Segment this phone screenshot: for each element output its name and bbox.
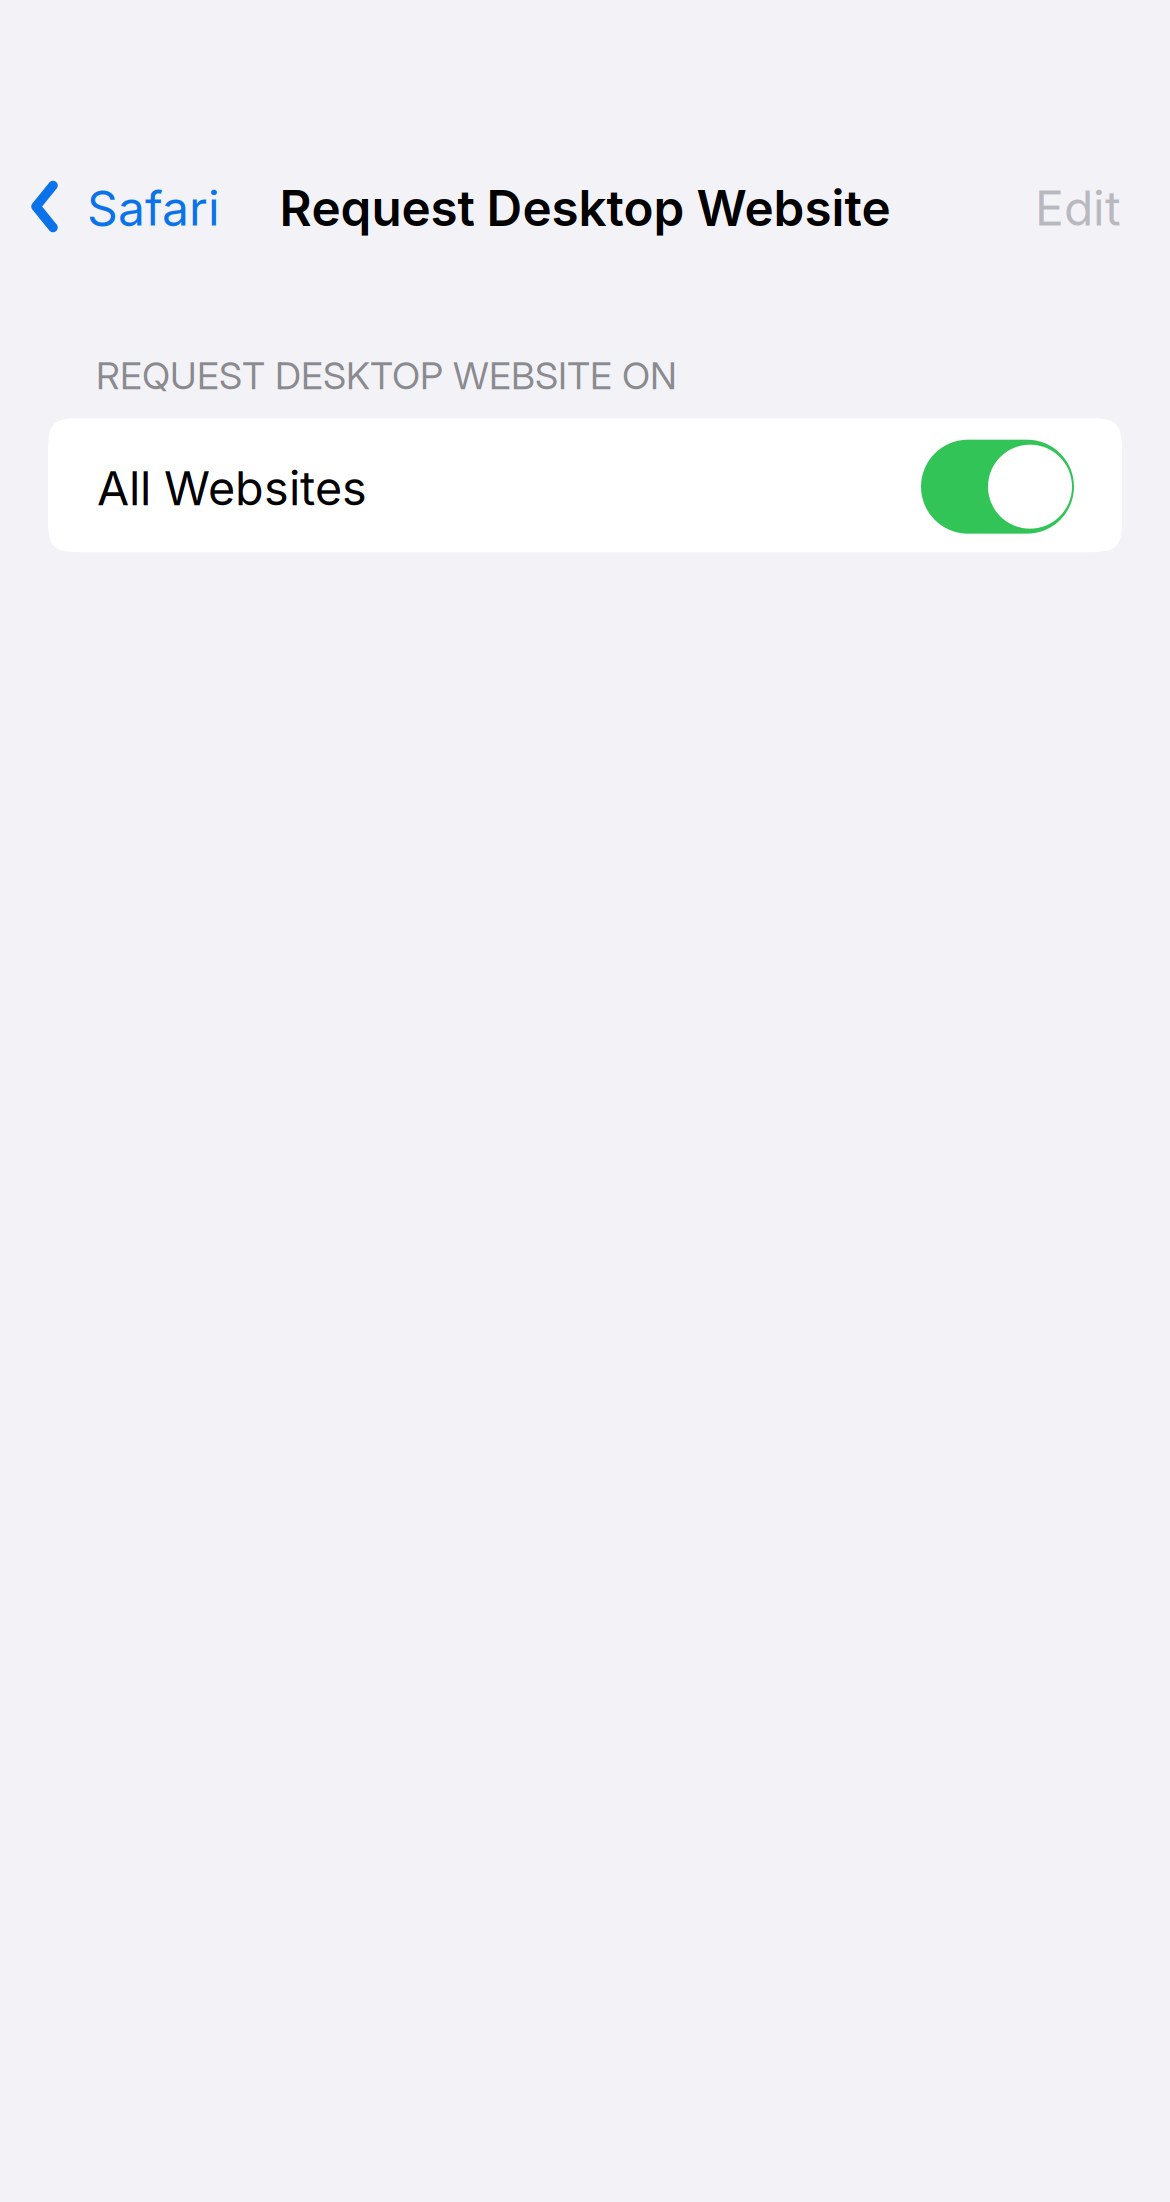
button[interactable]: All Websites <box>48 418 1122 552</box>
staticText: Request Desktop Website <box>279 178 890 238</box>
button[interactable]: Edit <box>1035 165 1170 251</box>
staticText: All Websites <box>97 460 367 516</box>
staticText: Safari <box>87 179 220 237</box>
button[interactable]: Back to Safari <box>0 165 220 251</box>
staticText: REQUEST DESKTOP WEBSITE ON <box>96 353 677 398</box>
staticText: Edit <box>1035 179 1121 237</box>
